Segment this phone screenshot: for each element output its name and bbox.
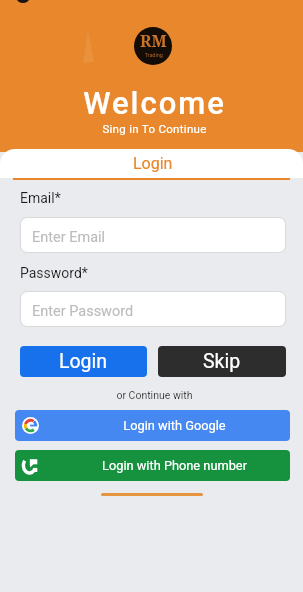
staticText: Password*: [20, 265, 88, 281]
staticText: or Continue with: [3, 389, 303, 401]
staticText: Email*: [20, 190, 61, 206]
button[interactable]: Login: [20, 346, 147, 377]
staticText: Enter Password: [32, 303, 134, 320]
staticText: Login: [133, 154, 173, 173]
staticText: RM: [140, 30, 167, 52]
other: Login with Phone number: [22, 457, 39, 474]
staticText: Welcome: [3, 85, 303, 121]
staticText: Skip: [203, 350, 241, 373]
staticText: Sing in To Continue: [3, 122, 303, 135]
button[interactable]: Login with Phone number: [15, 450, 290, 481]
button[interactable]: Enter Password: [21, 292, 285, 326]
staticText: Enter Email: [32, 229, 106, 246]
button[interactable]: Enter Email: [21, 218, 285, 252]
staticText: Login: [59, 350, 108, 373]
staticText: Trading: [145, 52, 163, 59]
button[interactable]: Login with Google: [15, 410, 290, 441]
button[interactable]: Login: [0, 149, 303, 178]
other: Login with Google: [22, 417, 39, 434]
staticText: Login with Google: [59, 418, 290, 433]
button[interactable]: Skip: [158, 346, 286, 377]
staticText: Login with Phone number: [59, 458, 290, 473]
